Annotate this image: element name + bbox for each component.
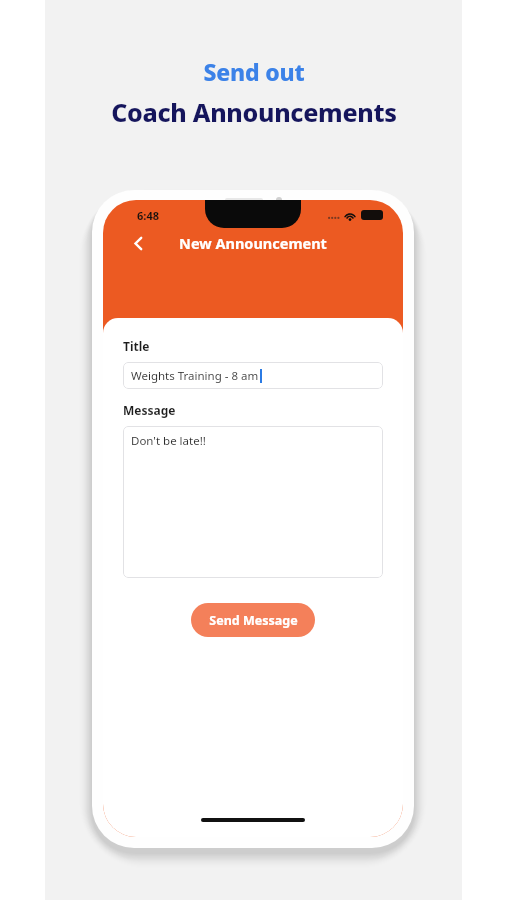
button[interactable]: Send Message bbox=[191, 603, 315, 637]
staticText: 6:48 bbox=[137, 208, 159, 223]
staticText: Weights Training - 8 am bbox=[131, 368, 259, 384]
staticText: Send Message bbox=[209, 612, 298, 629]
staticText: Don't be late!! bbox=[131, 433, 206, 449]
staticText: Message bbox=[123, 402, 176, 418]
button[interactable]: Don't be late!! bbox=[123, 426, 383, 578]
button[interactable]: Back bbox=[123, 230, 153, 256]
button[interactable]: Weights Training - 8 am bbox=[123, 362, 383, 389]
staticText: New Announcement bbox=[179, 233, 327, 253]
staticText: Send out bbox=[203, 56, 305, 87]
staticText: Title bbox=[123, 338, 150, 354]
staticText: Coach Announcements bbox=[111, 95, 397, 129]
